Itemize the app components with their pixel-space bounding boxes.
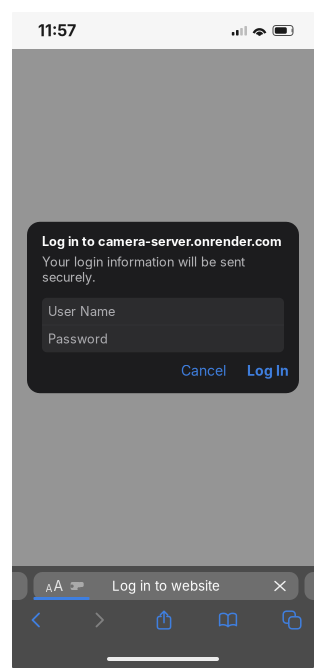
staticText: Log in to website bbox=[112, 578, 220, 594]
staticText: Log In bbox=[247, 362, 289, 379]
staticText: A bbox=[53, 577, 63, 594]
button[interactable]: Bookmarks bbox=[196, 605, 260, 635]
button[interactable]: Cancel bbox=[176, 357, 231, 384]
button[interactable]: Log In bbox=[242, 357, 294, 384]
staticText: Your login information will be sent secu… bbox=[42, 254, 245, 285]
staticText: User Name bbox=[48, 304, 115, 319]
button[interactable]: A bbox=[33, 572, 298, 600]
staticText: Log in to camera-server.onrender.com bbox=[42, 234, 282, 249]
button[interactable]: Tabs bbox=[260, 605, 317, 635]
button[interactable]: Forward bbox=[68, 605, 132, 635]
staticText: Password bbox=[48, 331, 108, 346]
staticText: A bbox=[45, 582, 52, 594]
staticText: Cancel bbox=[181, 362, 226, 379]
button[interactable]: Back bbox=[4, 605, 68, 635]
button[interactable]: Share bbox=[132, 605, 196, 635]
staticText: 11:57 bbox=[38, 21, 76, 40]
